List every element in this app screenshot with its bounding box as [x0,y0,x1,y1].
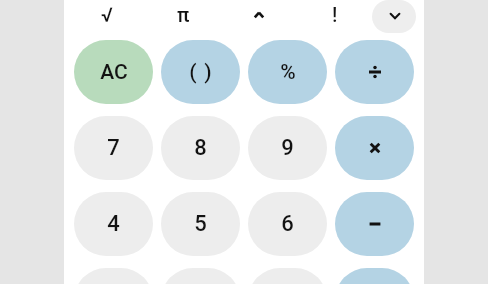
button[interactable]: Factorial [297,0,373,33]
button[interactable]: % [248,40,327,104]
button[interactable]: Subtract [335,192,414,256]
button[interactable]: Show more functions [372,0,416,33]
staticText: AC [100,60,128,85]
button[interactable]: 5 [161,192,240,256]
button[interactable]: Multiply [335,116,414,180]
staticText: % [280,60,296,85]
button[interactable]: 1 [74,268,153,284]
button[interactable]: AC [74,40,153,104]
button[interactable]: 3 [248,268,327,284]
button[interactable]: 6 [248,192,327,256]
staticText: ( ) [189,60,213,85]
staticText: 7 [107,135,120,161]
button[interactable]: 2 [161,268,240,284]
staticText: 5 [194,211,207,237]
button[interactable]: Divide [335,40,414,104]
staticText: 4 [107,211,120,237]
button[interactable]: Square root [69,0,145,33]
button[interactable]: 7 [74,116,153,180]
staticText: 6 [281,211,294,237]
button[interactable]: Add [335,268,414,284]
staticText: 8 [194,135,207,161]
staticText: π [177,3,190,26]
button[interactable]: 9 [248,116,327,180]
button[interactable]: 4 [74,192,153,256]
staticText: 9 [281,135,294,161]
staticText: ! [332,3,338,26]
staticText: √ [101,3,113,26]
button[interactable]: 8 [161,116,240,180]
button[interactable]: ( ) [161,40,240,104]
button[interactable]: Pi [145,0,221,33]
button[interactable]: Power [221,0,297,33]
